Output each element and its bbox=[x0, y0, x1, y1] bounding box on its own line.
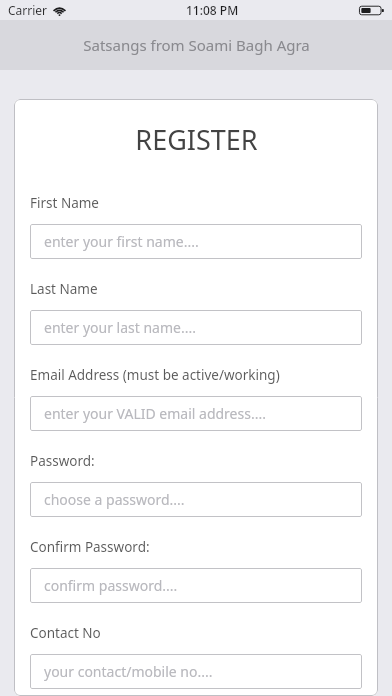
button[interactable]: your contact/mobile no.... bbox=[30, 654, 362, 689]
staticText: Carrier bbox=[8, 2, 48, 18]
staticText: Email Address (must be active/working) bbox=[30, 366, 280, 384]
staticText: Last Name bbox=[30, 280, 98, 298]
staticText: enter your VALID email address.... bbox=[44, 404, 266, 423]
button[interactable]: confirm password.... bbox=[30, 568, 362, 603]
staticText: enter your first name.... bbox=[44, 232, 199, 251]
staticText: enter your last name.... bbox=[44, 318, 196, 337]
staticText: REGISTER bbox=[135, 121, 258, 158]
button[interactable]: enter your first name.... bbox=[30, 224, 362, 259]
staticText: Password: bbox=[30, 452, 95, 470]
staticText: your contact/mobile no.... bbox=[44, 662, 213, 681]
button[interactable]: enter your VALID email address.... bbox=[30, 396, 362, 431]
staticText: Satsangs from Soami Bagh Agra bbox=[83, 35, 310, 55]
staticText: Confirm Password: bbox=[30, 538, 150, 556]
staticText: First Name bbox=[30, 194, 99, 212]
staticText: confirm password.... bbox=[44, 576, 178, 595]
staticText: Contact No bbox=[30, 624, 101, 642]
button[interactable]: choose a password.... bbox=[30, 482, 362, 517]
staticText: choose a password.... bbox=[44, 490, 185, 509]
staticText: 11:08 PM bbox=[186, 2, 239, 18]
button[interactable]: enter your last name.... bbox=[30, 310, 362, 345]
